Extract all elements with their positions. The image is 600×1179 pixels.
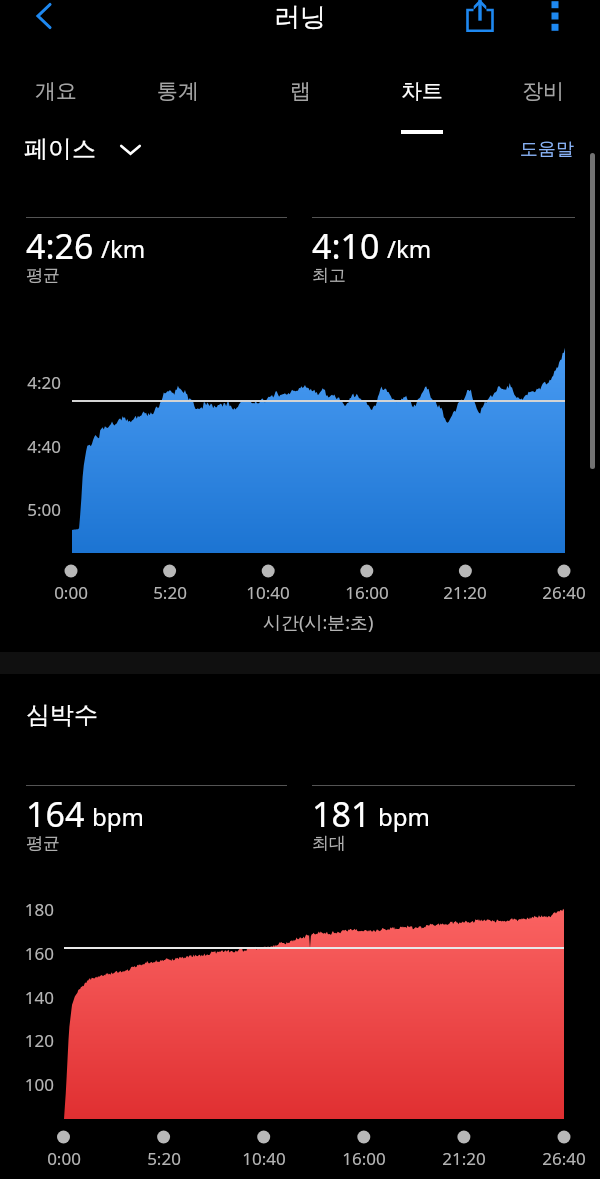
staticText: 10:40 [246,581,290,604]
staticText: 심박수 [26,700,98,730]
staticText: 180 [24,898,54,921]
staticText: 4:10 [312,223,380,269]
staticText: 120 [24,1029,54,1052]
staticText: 10:40 [242,1147,286,1170]
button[interactable]: 개요 [0,60,116,107]
staticText: 0:00 [54,581,88,604]
staticText: 페이스 [24,134,96,164]
staticText: 21:20 [442,1147,486,1170]
button[interactable]: 통계 [118,60,238,107]
button[interactable]: 장비 [483,60,600,107]
staticText: 140 [24,986,54,1009]
staticText: 평균 [26,265,60,286]
staticText: 181 [312,791,371,837]
staticText: 4:26 [26,223,94,269]
staticText: /km [387,232,432,265]
button[interactable]: 도움말 [494,133,574,165]
staticText: 통계 [157,78,199,104]
staticText: bpm [378,800,430,833]
staticText: /km [101,232,146,265]
button[interactable]: 랩 [240,60,360,107]
staticText: 100 [24,1073,54,1096]
button[interactable]: 페이스 [24,133,141,165]
staticText: 21:20 [443,581,487,604]
button[interactable]: 차트 [362,60,482,107]
staticText: 16:00 [342,1147,386,1170]
staticText: 26:40 [542,581,586,604]
button[interactable]: More options [527,0,583,44]
staticText: 16:00 [345,581,389,604]
staticText: 차트 [401,78,443,104]
staticText: 164 [26,791,85,837]
staticText: 평균 [26,833,60,854]
staticText: 최대 [312,833,346,854]
staticText: 0:00 [47,1147,81,1170]
button[interactable]: Back [16,0,72,44]
staticText: 러닝 [274,1,326,34]
staticText: 랩 [290,78,311,104]
staticText: 시간(시:분:초) [263,610,374,635]
staticText: 장비 [522,78,564,104]
staticText: 도움말 [520,138,574,161]
staticText: 개요 [35,78,77,104]
staticText: 26:40 [542,1147,586,1170]
staticText: 4:40 [27,435,61,458]
staticText: 4:20 [27,371,61,394]
staticText: bpm [92,800,144,833]
staticText: 5:00 [27,498,61,521]
staticText: 5:20 [147,1147,181,1170]
button[interactable]: Share [452,0,508,44]
staticText: 160 [24,942,54,965]
staticText: 최고 [312,265,346,286]
staticText: 5:20 [153,581,187,604]
